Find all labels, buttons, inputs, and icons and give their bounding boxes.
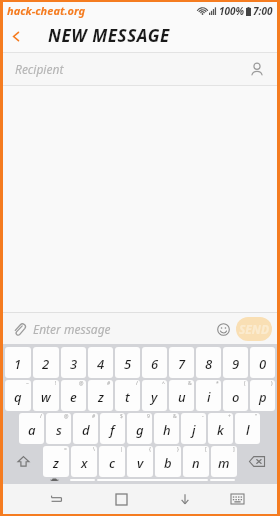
staticText: c xyxy=(109,454,116,472)
staticText: z xyxy=(98,388,104,406)
button[interactable]: ~ xyxy=(5,380,31,411)
button[interactable]: - xyxy=(181,413,206,444)
staticText: [ xyxy=(205,446,207,453)
staticText: j xyxy=(192,421,196,439)
staticText: ) xyxy=(271,380,273,387)
staticText: Recipient xyxy=(15,61,64,77)
staticText: SEND xyxy=(236,321,272,337)
button[interactable]: Recents xyxy=(36,484,77,514)
button[interactable]: 7 xyxy=(169,347,194,378)
button[interactable]: 0 xyxy=(250,347,275,378)
button[interactable]: 4 xyxy=(88,347,113,378)
staticText: 7 xyxy=(178,355,186,373)
button[interactable]: 5 xyxy=(115,347,140,378)
staticText: | xyxy=(120,446,123,453)
button[interactable]: = xyxy=(43,446,69,477)
staticText: o xyxy=(232,388,240,406)
button[interactable]: ) xyxy=(250,380,275,411)
staticText: 9 xyxy=(232,355,240,373)
staticText: / xyxy=(40,413,42,420)
staticText: Enter message xyxy=(33,321,212,337)
staticText: ~ xyxy=(26,380,29,387)
button[interactable]: @ xyxy=(61,380,86,411)
staticText: 6 xyxy=(151,355,159,373)
button[interactable]: / xyxy=(19,413,44,444)
button[interactable]: Voice input xyxy=(40,479,68,481)
button[interactable]: } xyxy=(155,446,181,477)
staticText: - xyxy=(202,413,204,420)
staticText: { xyxy=(149,446,151,453)
button[interactable]: + xyxy=(208,413,233,444)
staticText: t xyxy=(125,388,130,406)
staticText: 100% xyxy=(219,4,245,18)
button[interactable]: 2 xyxy=(33,347,59,378)
staticText: 3 xyxy=(70,355,78,373)
button[interactable]: ( xyxy=(223,380,248,411)
button[interactable]: * xyxy=(196,380,221,411)
button[interactable]: Attach xyxy=(7,317,31,341)
staticText: b xyxy=(164,454,172,472)
button[interactable]: Backspace xyxy=(239,446,275,477)
button[interactable]: | xyxy=(99,446,125,477)
button[interactable]: \ xyxy=(71,446,97,477)
staticText: " xyxy=(255,413,258,420)
staticText: # xyxy=(107,380,111,387)
staticText: g xyxy=(136,421,144,439)
button[interactable]: Add recipient xyxy=(245,57,269,81)
button[interactable]: SEND xyxy=(236,317,272,341)
staticText: \ xyxy=(93,446,95,453)
button[interactable]: Back xyxy=(3,23,29,49)
button[interactable]: " xyxy=(235,413,260,444)
button[interactable]: { xyxy=(127,446,153,477)
button[interactable]: 9 xyxy=(223,347,248,378)
button[interactable]: 8 xyxy=(196,347,221,378)
staticText: d xyxy=(82,421,90,439)
button[interactable]: Hide keyboard xyxy=(165,484,205,514)
button[interactable]: Recipient xyxy=(3,53,277,85)
staticText: 4 xyxy=(97,355,105,373)
staticText: + xyxy=(228,413,231,420)
staticText: / xyxy=(136,380,138,387)
staticText: w xyxy=(41,388,51,406)
staticText: 5 xyxy=(124,355,132,373)
button[interactable]: # xyxy=(88,380,113,411)
button[interactable]: ! xyxy=(33,380,59,411)
staticText: v xyxy=(137,454,144,472)
staticText: 1 xyxy=(14,355,22,373)
button[interactable]: [ xyxy=(183,446,209,477)
button[interactable]: & xyxy=(154,413,179,444)
button[interactable]: ^ xyxy=(142,380,167,411)
staticText: ^ xyxy=(162,380,165,387)
button[interactable]: 3 xyxy=(61,347,86,378)
button[interactable]: & xyxy=(169,380,194,411)
staticText: } xyxy=(177,446,179,453)
button[interactable]: 9 xyxy=(127,413,152,444)
staticText: * xyxy=(216,380,219,387)
button[interactable]: ] xyxy=(211,446,237,477)
button[interactable]: @ xyxy=(46,413,71,444)
button[interactable]: $ xyxy=(100,413,125,444)
staticText: # xyxy=(92,413,96,420)
button[interactable]: Emoji xyxy=(212,318,234,340)
staticText: ( xyxy=(244,380,246,387)
staticText: 8 xyxy=(205,355,213,373)
staticText: u xyxy=(178,388,186,406)
button[interactable]: # xyxy=(73,413,98,444)
staticText: m xyxy=(218,454,230,472)
button[interactable]: 1 xyxy=(5,347,31,378)
button[interactable]: Home xyxy=(101,484,141,514)
button[interactable]: 6 xyxy=(142,347,167,378)
staticText: k xyxy=(217,421,224,439)
staticText: 2 xyxy=(42,355,50,373)
button[interactable]: Keyboard xyxy=(217,484,257,514)
staticText: @ xyxy=(64,413,69,420)
button[interactable]: / xyxy=(115,380,140,411)
button[interactable]: Shift xyxy=(5,446,41,477)
staticText: & xyxy=(188,380,192,387)
